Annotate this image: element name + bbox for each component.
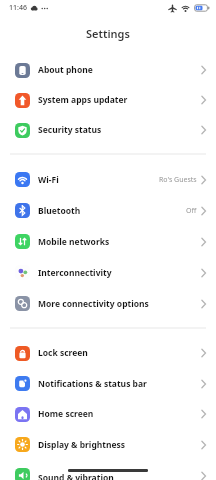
button[interactable]: System apps updater — [0, 85, 216, 115]
staticText: Ro's Guests — [159, 175, 197, 185]
staticText: Settings — [86, 26, 130, 41]
staticText: More connectivity options — [38, 298, 149, 310]
staticText: Security status — [38, 124, 102, 136]
button[interactable]: Mobile networks — [0, 226, 216, 257]
button[interactable]: Interconnectivity — [0, 257, 216, 288]
staticText: Lock screen — [38, 347, 88, 359]
staticText: 11:46 — [9, 3, 27, 13]
button[interactable]: About phone — [0, 55, 216, 85]
staticText: Off — [186, 206, 197, 216]
button[interactable]: Display & brightness — [0, 429, 216, 460]
button[interactable]: Security status — [0, 115, 216, 145]
staticText: System apps updater — [38, 94, 128, 106]
staticText: Bluetooth — [38, 205, 81, 217]
button[interactable]: Notifications & status bar — [0, 368, 216, 399]
button[interactable]: Lock screen — [0, 338, 216, 368]
staticText: Sound & vibration — [38, 472, 114, 480]
button[interactable]: Bluetooth — [0, 195, 216, 226]
staticText: Wi-Fi — [38, 174, 59, 186]
button[interactable]: Wi-Fi — [0, 164, 216, 195]
staticText: Notifications & status bar — [38, 378, 147, 390]
button[interactable]: Home screen — [0, 399, 216, 429]
staticText: Mobile networks — [38, 236, 110, 248]
button[interactable]: Sound & vibration — [0, 460, 216, 480]
staticText: About phone — [38, 64, 93, 76]
staticText: Display & brightness — [38, 439, 126, 451]
staticText: Home screen — [38, 408, 94, 420]
button[interactable]: More connectivity options — [0, 288, 216, 319]
staticText: Interconnectivity — [38, 267, 112, 279]
